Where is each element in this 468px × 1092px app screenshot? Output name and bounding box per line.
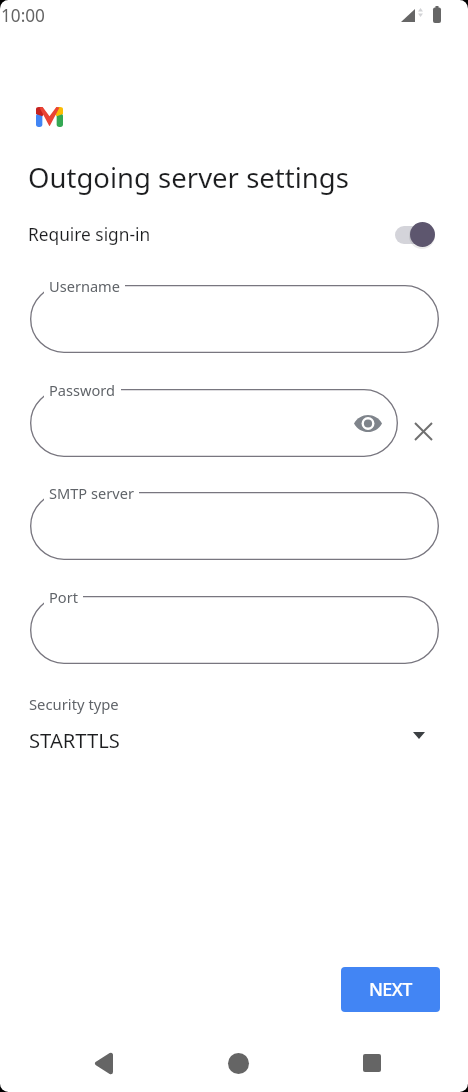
staticText: Password [49, 380, 116, 400]
staticText: NEXT [369, 977, 412, 1002]
button[interactable]: Username [30, 285, 439, 353]
button[interactable]: Recent apps [354, 1045, 390, 1081]
staticText: Require sign-in [28, 223, 151, 247]
staticText: Port [49, 587, 78, 607]
button[interactable]: STARTTLS [0, 722, 468, 762]
staticText: Outgoing server settings [28, 159, 349, 196]
button[interactable]: Show password [352, 407, 384, 439]
staticText: STARTTLS [29, 726, 120, 754]
button[interactable]: Require sign-in [388, 214, 436, 256]
staticText: Security type [29, 694, 119, 714]
button[interactable]: Clear [407, 415, 440, 448]
button[interactable]: SMTP server [30, 492, 439, 560]
staticText: Username [49, 276, 120, 296]
button[interactable]: Password [30, 389, 398, 457]
button[interactable]: Home [220, 1045, 256, 1081]
button[interactable]: Back [85, 1045, 121, 1081]
staticText: 10:00 [1, 4, 45, 27]
button[interactable]: Port [30, 596, 439, 664]
button[interactable]: Require sign-in [0, 212, 468, 258]
button[interactable]: NEXT [341, 967, 440, 1012]
staticText: SMTP server [49, 483, 134, 503]
